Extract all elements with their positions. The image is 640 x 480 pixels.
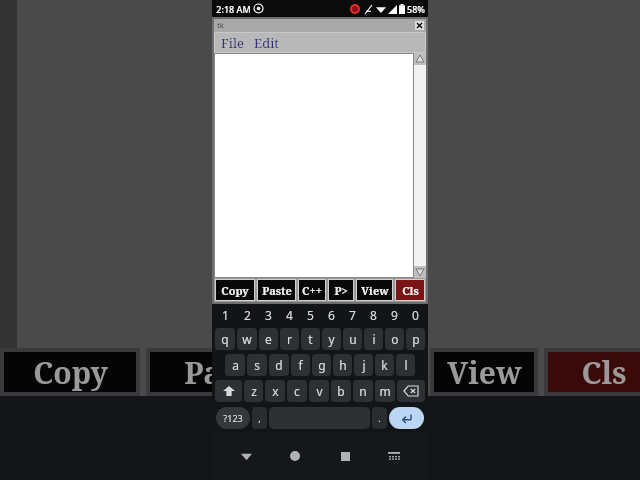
button[interactable]: File	[215, 34, 250, 52]
button[interactable]: Cls	[396, 280, 424, 300]
button[interactable]: Backspace	[397, 380, 425, 402]
button[interactable]: 5	[300, 304, 321, 326]
button[interactable]: Home	[280, 441, 310, 471]
button[interactable]: 2	[236, 304, 258, 326]
button[interactable]: x	[265, 380, 285, 402]
button[interactable]: Edit	[250, 34, 283, 52]
button[interactable]: Keyboard switcher	[379, 441, 409, 471]
staticText: u	[349, 331, 357, 347]
staticText: Paste	[262, 283, 292, 298]
button[interactable]: k	[375, 354, 394, 376]
button[interactable]: p	[406, 328, 425, 350]
staticText: h	[339, 357, 347, 373]
staticText: e	[265, 331, 272, 347]
staticText: 5	[307, 307, 314, 323]
button[interactable]: Paste	[258, 280, 295, 300]
staticText: p	[412, 331, 420, 347]
button[interactable]: Enter	[389, 407, 424, 429]
staticText: Copy	[33, 352, 108, 392]
button[interactable]: Period	[372, 407, 387, 429]
button[interactable]: z	[244, 380, 263, 402]
button[interactable]: View	[357, 280, 392, 300]
button[interactable]: s	[247, 354, 267, 376]
button[interactable]: 7	[342, 304, 363, 326]
staticText: f	[298, 357, 303, 373]
button[interactable]: t	[301, 328, 320, 350]
staticText: 9	[391, 307, 398, 323]
button[interactable]: 0	[405, 304, 426, 326]
staticText: ?123	[223, 412, 243, 424]
staticText: tk	[217, 21, 224, 31]
button[interactable]: a	[225, 354, 245, 376]
staticText: ,	[258, 412, 261, 424]
staticText: 0	[412, 307, 419, 323]
staticText: s	[254, 357, 260, 373]
staticText: Past	[184, 352, 248, 392]
button[interactable]: Close	[415, 21, 424, 30]
button[interactable]: d	[269, 354, 289, 376]
staticText: n	[359, 383, 367, 399]
button[interactable]: ?123	[216, 407, 250, 429]
button[interactable]: b	[331, 380, 351, 402]
staticText: y	[328, 331, 335, 347]
staticText: Cls	[402, 283, 419, 298]
staticText: File	[221, 34, 244, 52]
button[interactable]: 6	[321, 304, 342, 326]
staticText: 4	[286, 307, 293, 323]
button[interactable]: 8	[363, 304, 384, 326]
staticText: 2:18 AM	[216, 3, 251, 15]
button[interactable]: Copy	[216, 280, 254, 300]
staticText: 3	[265, 307, 272, 323]
button[interactable]: Back	[231, 441, 261, 471]
staticText: P>	[334, 283, 348, 298]
button[interactable]: j	[354, 354, 373, 376]
button[interactable]: h	[333, 354, 352, 376]
staticText: g	[318, 357, 326, 373]
button[interactable]: 4	[279, 304, 300, 326]
button[interactable]: P>	[329, 280, 353, 300]
button[interactable]: 3	[258, 304, 279, 326]
staticText: C++	[302, 283, 322, 298]
button[interactable]: Recents	[330, 441, 360, 471]
button[interactable]: y	[322, 328, 341, 350]
button[interactable]: r	[280, 328, 299, 350]
staticText: k	[381, 357, 388, 373]
button[interactable]: 1	[214, 304, 236, 326]
staticText: 58%	[407, 3, 425, 15]
staticText: c	[294, 383, 300, 399]
staticText: r	[287, 331, 292, 347]
button[interactable]: q	[215, 328, 235, 350]
button[interactable]: m	[375, 380, 395, 402]
staticText: 6	[328, 307, 335, 323]
staticText: z	[251, 383, 257, 399]
staticText: 8	[370, 307, 377, 323]
staticText: 2	[244, 307, 251, 323]
button[interactable]: f	[291, 354, 310, 376]
button[interactable]: Shift	[215, 380, 242, 402]
staticText: j	[362, 357, 366, 373]
staticText: v	[316, 383, 323, 399]
button[interactable]: u	[343, 328, 362, 350]
button[interactable]: 9	[384, 304, 405, 326]
staticText: m	[379, 383, 391, 399]
button[interactable]: i	[364, 328, 383, 350]
button[interactable]: g	[312, 354, 331, 376]
staticText: q	[221, 331, 229, 347]
staticText: t	[308, 331, 313, 347]
button[interactable]: v	[309, 380, 329, 402]
staticText: .	[378, 412, 381, 424]
button[interactable]: e	[259, 328, 278, 350]
button[interactable]: l	[396, 354, 415, 376]
staticText: i	[372, 331, 376, 347]
staticText: a	[232, 357, 239, 373]
button[interactable]: c	[287, 380, 307, 402]
staticText: Edit	[254, 34, 279, 52]
staticText: Copy	[221, 283, 249, 298]
button[interactable]: w	[237, 328, 257, 350]
button[interactable]: o	[385, 328, 404, 350]
button[interactable]: n	[353, 380, 373, 402]
button[interactable]: Comma	[252, 407, 267, 429]
button[interactable]: C++	[299, 280, 325, 300]
